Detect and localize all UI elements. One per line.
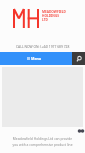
- button[interactable]: Meadowfield Holdings Ltd: [13, 9, 66, 28]
- button[interactable]: CALL NOW ON: (+44) 1977 689 728: [0, 44, 85, 48]
- staticText: MEADOWFIELD: [42, 10, 66, 14]
- staticText: Menu: [31, 56, 42, 61]
- button[interactable]: Search: [72, 52, 85, 65]
- staticText: CALL NOW ON: (+44) 1977 689 728: [16, 44, 70, 48]
- staticText: LTD: [42, 18, 48, 22]
- staticText: HOLDINGS: [42, 14, 59, 18]
- staticText: Meadowfield Holdings Ltd can provide you…: [12, 136, 73, 147]
- button[interactable]: Chat widget: [77, 128, 84, 134]
- button[interactable]: Menu: [27, 56, 42, 61]
